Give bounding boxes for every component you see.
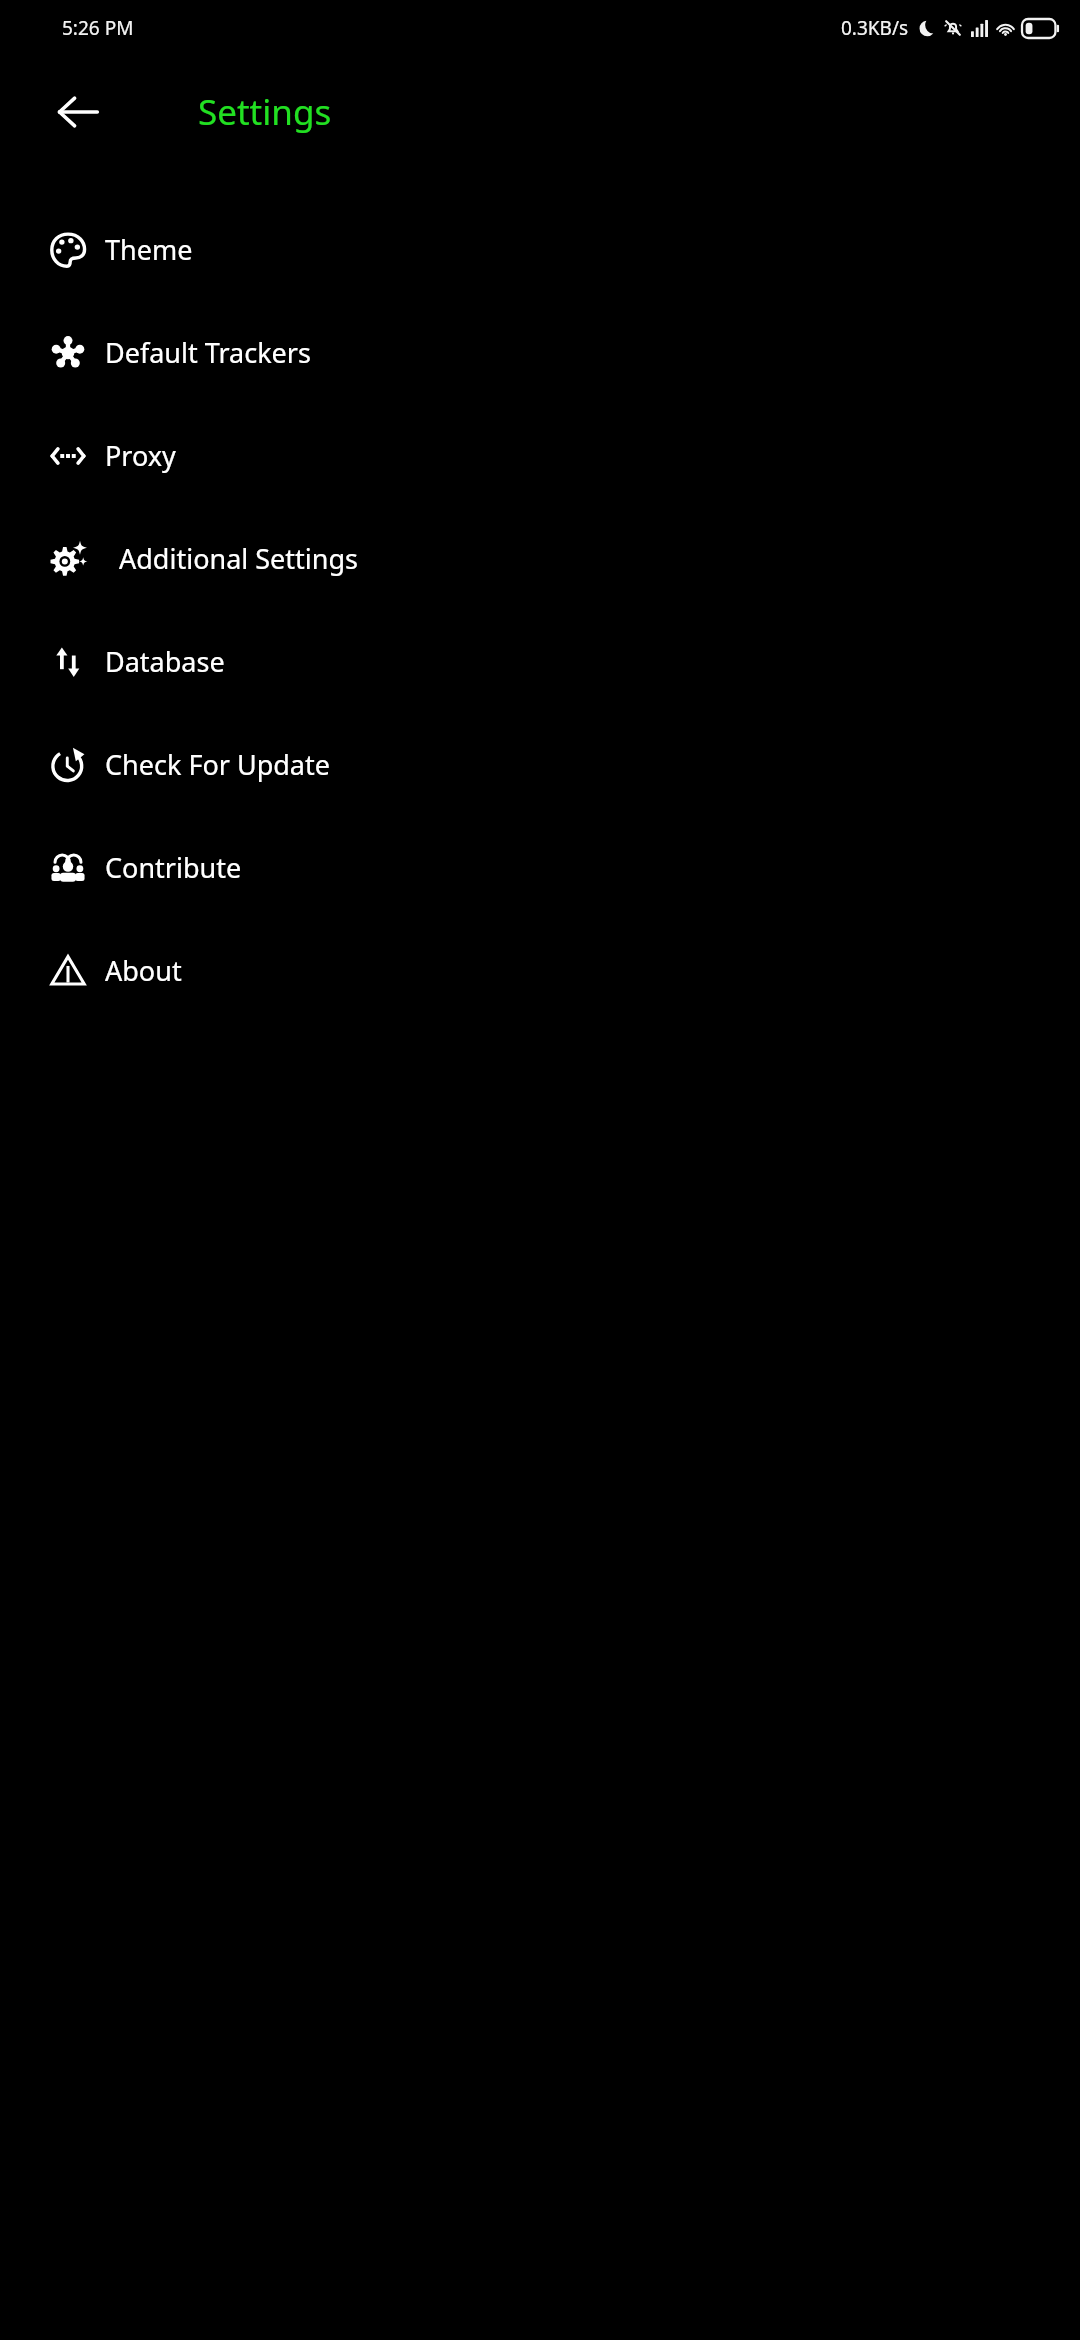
- staticText: Settings: [198, 88, 332, 136]
- button[interactable]: Check For Update: [0, 713, 1080, 816]
- button[interactable]: Proxy: [0, 404, 1080, 507]
- staticText: About: [105, 952, 182, 989]
- button[interactable]: About: [0, 919, 1080, 1022]
- button[interactable]: Theme: [0, 198, 1080, 301]
- button[interactable]: Database: [0, 610, 1080, 713]
- staticText: Theme: [105, 231, 193, 268]
- staticText: Proxy: [105, 437, 176, 474]
- staticText: Contribute: [105, 849, 242, 886]
- staticText: 0.3KB/s: [841, 15, 909, 41]
- button[interactable]: Additional Settings: [0, 507, 1080, 610]
- staticText: Database: [105, 643, 225, 680]
- staticText: Check For Update: [105, 746, 330, 783]
- button[interactable]: Default Trackers: [0, 301, 1080, 404]
- staticText: Additional Settings: [119, 540, 359, 577]
- button[interactable]: Contribute: [0, 816, 1080, 919]
- staticText: 5:26 PM: [62, 15, 134, 41]
- staticText: Default Trackers: [105, 334, 311, 371]
- button[interactable]: Back: [30, 64, 126, 160]
